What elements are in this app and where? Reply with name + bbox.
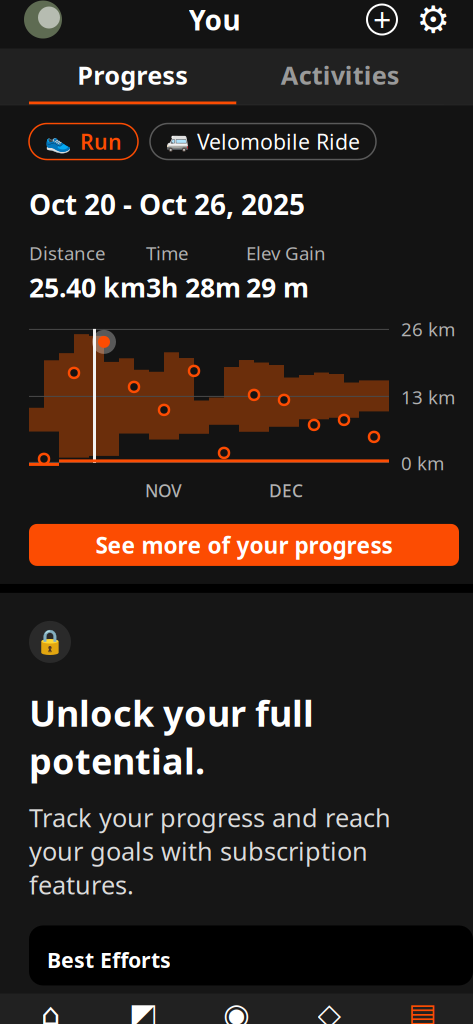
- staticText: 25.40 km: [29, 269, 146, 305]
- button[interactable]: 🚐: [150, 123, 376, 159]
- staticText: ⚙: [416, 0, 449, 41]
- staticText: Best Efforts: [47, 945, 171, 974]
- button[interactable]: Settings: [417, 3, 449, 35]
- staticText: 👟: [45, 129, 72, 154]
- button[interactable]: Activities: [236, 48, 444, 104]
- staticText: Time: [146, 241, 189, 265]
- button[interactable]: ◩: [97, 993, 190, 1024]
- staticText: Progress: [77, 58, 188, 92]
- staticText: 26 km: [401, 316, 455, 341]
- staticText: You: [188, 1, 240, 38]
- staticText: Elev Gain: [246, 241, 326, 265]
- staticText: Activities: [281, 58, 400, 92]
- staticText: ⌂: [41, 997, 60, 1024]
- button[interactable]: Add: [367, 4, 397, 34]
- staticText: ◉: [223, 997, 250, 1024]
- staticText: 🔒: [35, 628, 65, 656]
- staticText: 🚐: [166, 131, 189, 152]
- staticText: 0 km: [401, 450, 444, 475]
- button[interactable]: Profile: [24, 0, 62, 38]
- button[interactable]: ◇: [283, 993, 376, 1024]
- staticText: NOV: [145, 479, 182, 502]
- staticText: +: [373, 0, 391, 41]
- button[interactable]: ▤: [376, 993, 469, 1024]
- button[interactable]: 👟: [29, 123, 138, 159]
- staticText: Velomobile Ride: [197, 127, 360, 156]
- staticText: 29 m: [246, 269, 309, 305]
- button[interactable]: ◉: [190, 993, 283, 1024]
- staticText: See more of your progress: [95, 530, 392, 560]
- staticText: Unlock your full potential.: [29, 689, 314, 784]
- button[interactable]: Progress: [29, 48, 236, 104]
- staticText: DEC: [269, 479, 303, 502]
- staticText: 13 km: [401, 384, 455, 409]
- staticText: 3h 28m: [146, 269, 241, 305]
- staticText: ◇: [317, 997, 341, 1024]
- button[interactable]: See more of your progress: [29, 524, 459, 566]
- staticText: Oct 20 - Oct 26, 2025: [29, 185, 305, 223]
- staticText: ◩: [129, 997, 158, 1024]
- button[interactable]: ⌂: [4, 993, 97, 1024]
- staticText: Run: [80, 127, 122, 156]
- staticText: Track your progress and reach your goals…: [29, 800, 391, 901]
- staticText: Distance: [29, 241, 106, 265]
- staticText: ▤: [408, 997, 437, 1024]
